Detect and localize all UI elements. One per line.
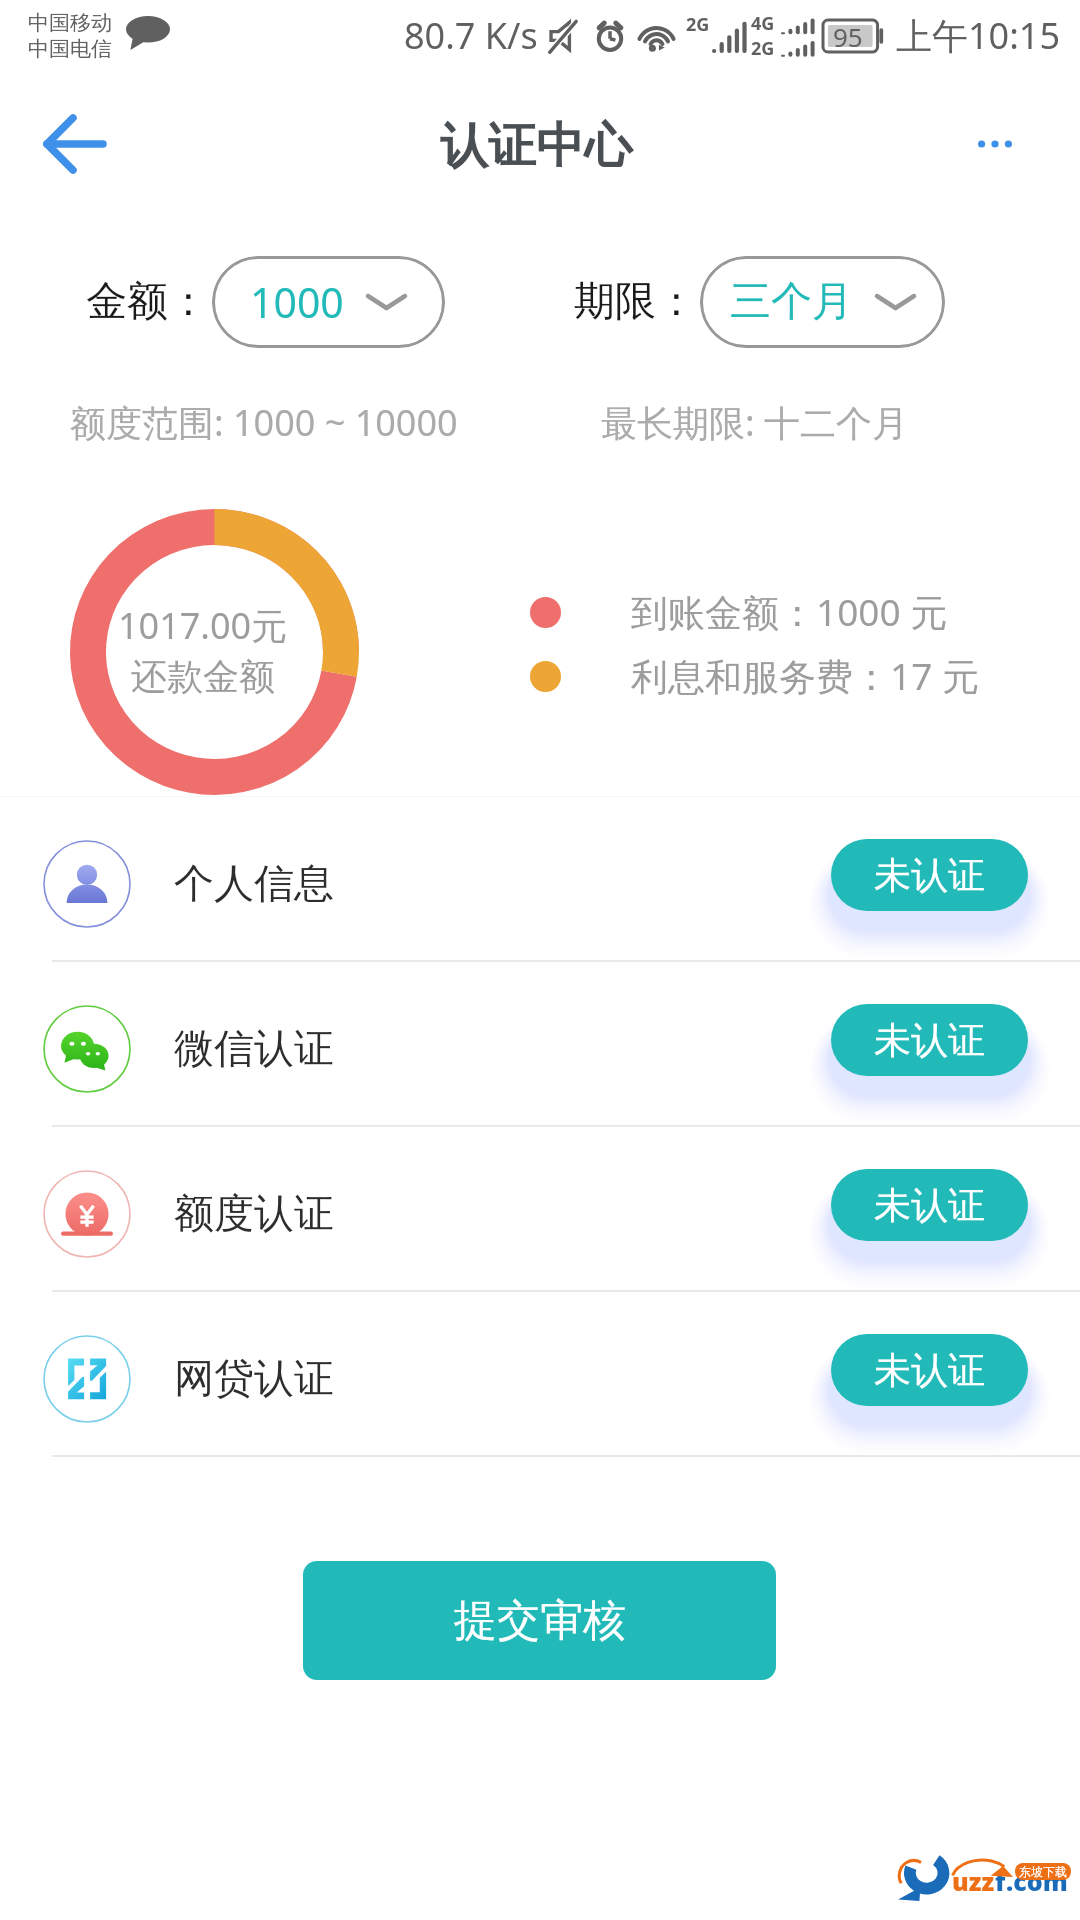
staticText: 1000 — [250, 274, 344, 330]
staticText: 未认证 — [874, 1347, 985, 1394]
staticText: 三个月 — [730, 276, 853, 328]
staticText: 未认证 — [874, 852, 985, 899]
staticText: 东坡下载 — [1019, 1864, 1067, 1879]
staticText: 80.7 K/s — [404, 11, 538, 60]
staticText: .com — [1006, 1864, 1068, 1898]
button[interactable]: 个人信息 — [0, 797, 1080, 960]
button[interactable]: 未认证 — [831, 839, 1028, 911]
staticText: 网贷认证 — [174, 1353, 334, 1403]
button[interactable]: 网贷认证 — [0, 1292, 1080, 1455]
staticText: 到账金额：1000 元 — [631, 586, 948, 637]
staticText: 还款金额 — [131, 654, 275, 699]
button[interactable]: 未认证 — [831, 1169, 1028, 1241]
button[interactable]: 额度认证 — [0, 1127, 1080, 1290]
button[interactable]: Back — [19, 90, 127, 198]
button[interactable]: 1000 — [212, 256, 445, 348]
staticText: 利息和服务费：17 元 — [631, 650, 979, 701]
staticText: 未认证 — [874, 1182, 985, 1229]
button[interactable]: 未认证 — [831, 1004, 1028, 1076]
staticText: uzz — [952, 1864, 995, 1898]
button[interactable]: 未认证 — [831, 1334, 1028, 1406]
staticText: 金额： — [86, 276, 209, 328]
staticText: 提交审核 — [454, 1594, 626, 1648]
staticText: 中国电信 — [28, 36, 112, 62]
staticText: 认证中心 — [440, 116, 632, 176]
staticText: 2G — [751, 36, 775, 61]
staticText: 1017.00元 — [118, 601, 288, 650]
staticText: 额度范围: 1000 ~ 10000 — [70, 398, 458, 447]
button[interactable]: More options — [955, 104, 1035, 184]
staticText: 上午10:15 — [896, 11, 1061, 60]
staticText: 期限： — [574, 276, 697, 328]
staticText: 最长期限: 十二个月 — [601, 398, 909, 447]
staticText: 中国移动 — [28, 10, 112, 36]
button[interactable]: 提交审核 — [303, 1561, 776, 1680]
button[interactable]: 微信认证 — [0, 962, 1080, 1125]
staticText: 微信认证 — [174, 1023, 334, 1073]
staticText: 未认证 — [874, 1017, 985, 1064]
staticText: 2G — [686, 12, 710, 37]
staticText: f — [995, 1864, 1006, 1898]
staticText: 额度认证 — [174, 1188, 334, 1238]
button[interactable]: 三个月 — [700, 256, 945, 348]
staticText: 4G — [751, 11, 775, 36]
staticText: 个人信息 — [174, 858, 334, 908]
staticText: 95 — [833, 19, 863, 51]
